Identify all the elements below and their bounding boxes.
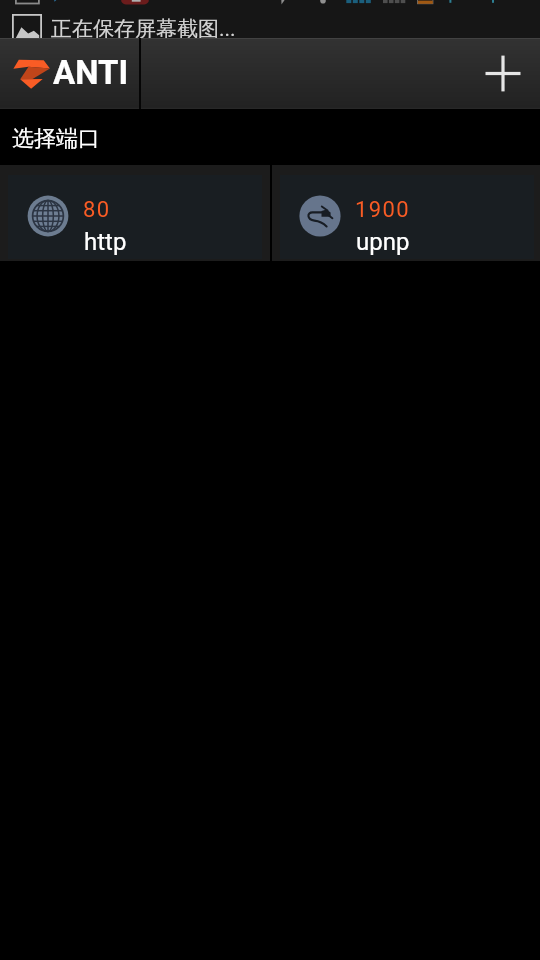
button[interactable]: 1900 [280, 175, 534, 259]
button[interactable]: 80 [8, 175, 262, 259]
staticText: ANTI [53, 53, 129, 92]
staticText: 80 [83, 197, 111, 223]
button[interactable]: ANTI [0, 38, 140, 109]
staticText: 1900 [355, 197, 411, 223]
staticText: 正在保存屏幕截图... [51, 16, 236, 42]
staticText: upnp [356, 228, 410, 256]
staticText: http [84, 228, 127, 256]
button[interactable]: Add [467, 38, 540, 109]
staticText: 选择端口 [12, 125, 100, 153]
